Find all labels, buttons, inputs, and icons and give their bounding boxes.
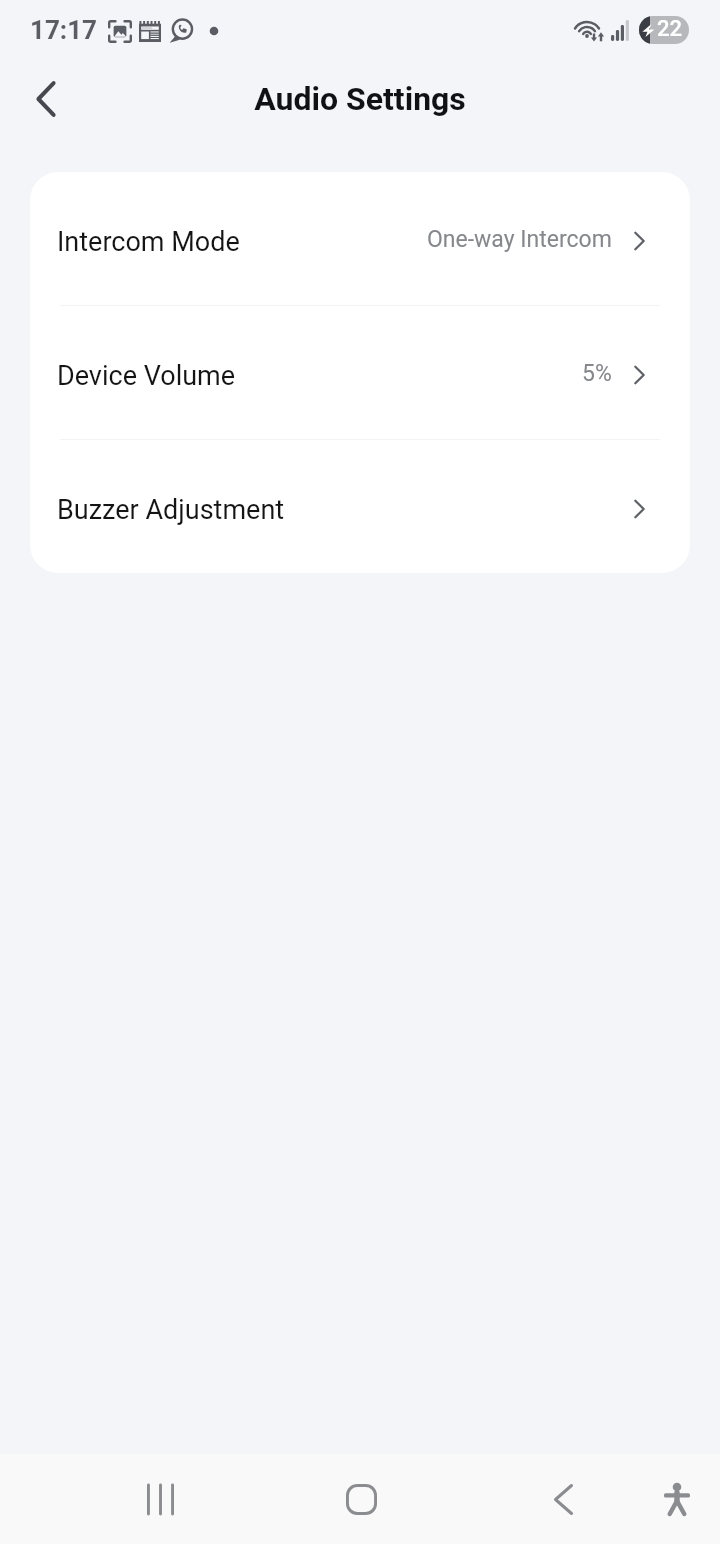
button[interactable]: Home — [316, 1454, 406, 1544]
staticText: 17:17 — [30, 15, 98, 45]
button[interactable]: Intercom Mode — [30, 172, 690, 305]
staticText: One-way Intercom — [427, 226, 612, 253]
staticText: Device Volume — [57, 360, 236, 392]
button[interactable]: Back — [518, 1454, 608, 1544]
button[interactable]: Back — [16, 69, 76, 129]
button[interactable]: Accessibility — [632, 1454, 720, 1544]
staticText: Audio Settings — [254, 80, 466, 118]
staticText: Buzzer Adjustment — [57, 494, 285, 526]
staticText: 22 — [657, 16, 683, 42]
button[interactable]: Buzzer Adjustment — [30, 440, 690, 573]
staticText: 5% — [582, 360, 612, 387]
button[interactable]: Recent apps — [115, 1454, 205, 1544]
button[interactable]: Device Volume — [30, 306, 690, 439]
staticText: Intercom Mode — [57, 226, 240, 258]
